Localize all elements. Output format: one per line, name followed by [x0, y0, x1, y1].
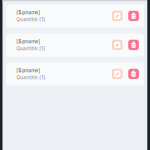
- staticText: Quantité: [1]: [16, 74, 45, 80]
- button[interactable]: Supprimer: [128, 69, 139, 79]
- button[interactable]: Supprimer: [128, 40, 139, 50]
- button[interactable]: Supprimer: [128, 11, 139, 21]
- button[interactable]: Modifier: [112, 11, 123, 21]
- button[interactable]: Modifier: [112, 69, 123, 79]
- staticText: [$.pname]: [16, 67, 40, 73]
- staticText: [$.pname]: [16, 38, 40, 44]
- staticText: Quantité: [1]: [16, 45, 45, 51]
- button[interactable]: Modifier: [112, 40, 123, 50]
- staticText: [$.pname]: [16, 9, 40, 15]
- staticText: Quantité: [1]: [16, 16, 45, 22]
